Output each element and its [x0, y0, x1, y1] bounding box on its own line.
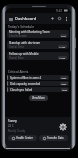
staticText: Sunny — [8, 119, 17, 123]
staticText: Transfer Data — [47, 136, 64, 140]
staticText: High — [61, 76, 67, 79]
button[interactable]: Follow up with Mobile — [7, 52, 69, 60]
staticText: View More — [32, 96, 45, 100]
button[interactable]: View More — [29, 95, 48, 101]
staticText: 14:00 — [59, 56, 66, 59]
staticText: Mostly Cloudy — [8, 129, 26, 133]
staticText: System offline in zone 4 — [10, 76, 60, 80]
staticText: 9:41 — [56, 9, 63, 13]
staticText: 22 C — [8, 124, 14, 128]
staticText: Standup with dev team — [9, 41, 41, 45]
staticText: Health Center — [16, 136, 33, 140]
staticText: Follow up with Mobile — [9, 52, 39, 56]
button[interactable]: Meeting with Marketing Team — [7, 30, 69, 38]
staticText: Charlie Brown — [9, 34, 27, 38]
button[interactable]: Menu — [7, 15, 15, 23]
button[interactable]: Cloud sync failed — [7, 87, 69, 92]
button[interactable]: Settings — [57, 121, 68, 132]
staticText: 11:00 — [59, 45, 66, 48]
button[interactable]: System offline in zone 4 — [7, 75, 69, 80]
staticText: Dashboard — [15, 16, 37, 21]
staticText: 9:30 — [61, 34, 66, 37]
button[interactable]: More options — [63, 16, 69, 22]
button[interactable]: Standup with dev team — [7, 41, 69, 49]
button[interactable]: Transfer Data — [39, 135, 68, 141]
staticText: Critical Alerts — [8, 70, 29, 74]
button[interactable]: Notifications — [56, 15, 63, 22]
button[interactable]: Health Center — [8, 135, 37, 141]
staticText: Med — [62, 88, 67, 91]
staticText: Daniel Ortiz — [9, 45, 24, 49]
staticText: Disk capacity exceeded — [10, 82, 60, 86]
button[interactable]: Disk capacity exceeded — [7, 81, 69, 86]
button[interactable]: Add — [49, 15, 56, 22]
staticText: Today's Schedule — [8, 25, 34, 29]
staticText: High — [61, 82, 67, 85]
staticText: Meeting with Marketing Team — [9, 30, 50, 34]
staticText: Cloud sync failed — [10, 88, 61, 92]
staticText: Daniel Ross — [9, 56, 24, 60]
